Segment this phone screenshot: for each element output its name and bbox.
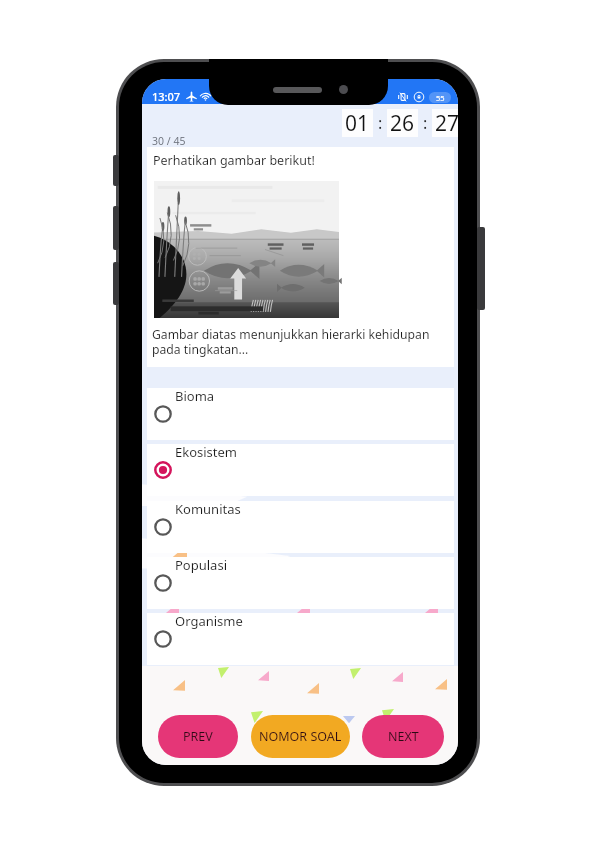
button[interactable]: Populasi	[142, 557, 458, 609]
staticText: Populasi	[175, 556, 227, 574]
staticText: Gambar diatas menunjukkan hierarki kehid…	[152, 326, 430, 357]
staticText: 26	[390, 109, 415, 137]
staticText: PREV	[183, 728, 213, 745]
staticText: Ekosistem	[175, 443, 238, 461]
button[interactable]: Organisme	[142, 613, 458, 665]
staticText: Perhatikan gambar berikut!	[153, 152, 315, 169]
button[interactable]: Komunitas	[142, 501, 458, 553]
staticText: :	[423, 112, 428, 134]
button[interactable]: NOMOR SOAL	[251, 715, 350, 758]
staticText: 27	[435, 109, 458, 137]
button[interactable]: NEXT	[362, 715, 444, 758]
staticText: Bioma	[175, 387, 215, 405]
staticText: 55	[436, 93, 445, 103]
staticText: NEXT	[388, 728, 419, 745]
staticText: Organisme	[175, 612, 243, 630]
staticText: 30 / 45	[152, 134, 186, 148]
button[interactable]: Bioma	[142, 388, 458, 440]
staticText: :	[378, 112, 383, 134]
staticText: 01	[345, 109, 370, 137]
staticText: NOMOR SOAL	[259, 728, 342, 745]
staticText: 13:07	[152, 89, 181, 104]
button[interactable]: Ekosistem	[142, 444, 458, 496]
staticText: Komunitas	[175, 500, 241, 518]
button[interactable]: PREV	[158, 715, 238, 758]
